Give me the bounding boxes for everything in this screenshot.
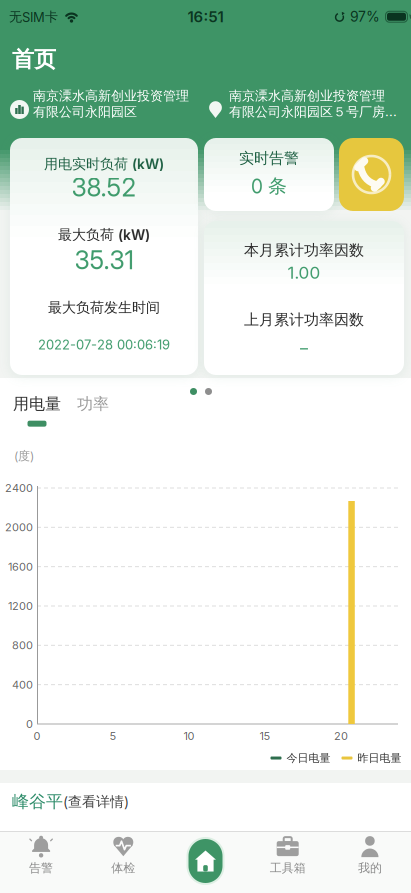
staticText: 功率 xyxy=(77,394,109,414)
staticText: 97% xyxy=(350,8,380,25)
button[interactable]: 南京溧水高新创业投资管理有限公司永阳园区 xyxy=(10,88,206,120)
staticText: 400 xyxy=(12,678,33,691)
staticText: 我的 xyxy=(358,861,382,875)
staticText: 南京溧水高新创业投资管理有限公司永阳园区５号厂房１栋２层 xyxy=(229,88,397,120)
staticText: 体检 xyxy=(111,861,135,875)
staticText: 峰谷平 xyxy=(12,791,63,812)
staticText: 15 xyxy=(259,729,270,742)
button[interactable]: 我的 xyxy=(335,831,405,879)
staticText: 16:51 xyxy=(187,8,223,26)
staticText: 0 xyxy=(33,729,40,742)
staticText: 首页 xyxy=(12,46,56,73)
button[interactable]: 功率 xyxy=(77,394,109,414)
staticText: (度) xyxy=(14,449,34,463)
button[interactable] xyxy=(339,138,404,211)
staticText: 告警 xyxy=(29,861,53,875)
staticText: 5 xyxy=(109,729,116,742)
staticText: 800 xyxy=(12,639,33,652)
staticText: 南京溧水高新创业投资管理有限公司永阳园区 xyxy=(33,88,189,120)
staticText: 1.00 xyxy=(287,262,320,282)
staticText: 最大负荷发生时间 xyxy=(48,299,160,316)
staticText: 10 xyxy=(183,729,194,742)
staticText: 20 xyxy=(334,729,348,742)
button[interactable] xyxy=(180,835,230,887)
staticText: 最大负荷 (kW) xyxy=(58,226,150,243)
staticText: 2000 xyxy=(5,521,33,534)
staticText: 无SIM卡 xyxy=(9,9,58,25)
staticText: 用电量 xyxy=(13,394,61,414)
staticText: (查看详情) xyxy=(63,793,129,810)
button[interactable]: 用电量 xyxy=(13,394,61,427)
staticText: 38.52 xyxy=(71,173,136,202)
staticText: 2400 xyxy=(5,481,33,494)
staticText: 35.31 xyxy=(74,245,133,275)
staticText: 实时告警 xyxy=(239,149,299,167)
staticText: 本月累计功率因数 xyxy=(244,241,364,259)
staticText: 1200 xyxy=(8,599,33,612)
staticText: 1600 xyxy=(8,560,33,573)
staticText: – xyxy=(300,339,308,358)
button[interactable]: 南京溧水高新创业投资管理有限公司永阳园区５号厂房１栋２层 xyxy=(206,88,401,120)
staticText: 工具箱 xyxy=(270,861,306,875)
staticText: 上月累计功率因数 xyxy=(244,310,364,329)
staticText: 用电实时负荷 (kW) xyxy=(44,155,164,173)
staticText: 0 xyxy=(26,717,33,730)
button[interactable]: 工具箱 xyxy=(253,831,323,879)
button[interactable]: 告警 xyxy=(6,831,76,879)
staticText: 昨日电量 xyxy=(357,751,401,765)
staticText: 0 条 xyxy=(251,174,287,198)
staticText: 2022-07-28 00:06:19 xyxy=(38,337,170,352)
button[interactable]: 实时告警 xyxy=(204,138,334,211)
button[interactable]: 体检 xyxy=(88,831,158,879)
staticText: 今日电量 xyxy=(286,751,330,765)
button[interactable]: 峰谷平 xyxy=(0,783,411,825)
